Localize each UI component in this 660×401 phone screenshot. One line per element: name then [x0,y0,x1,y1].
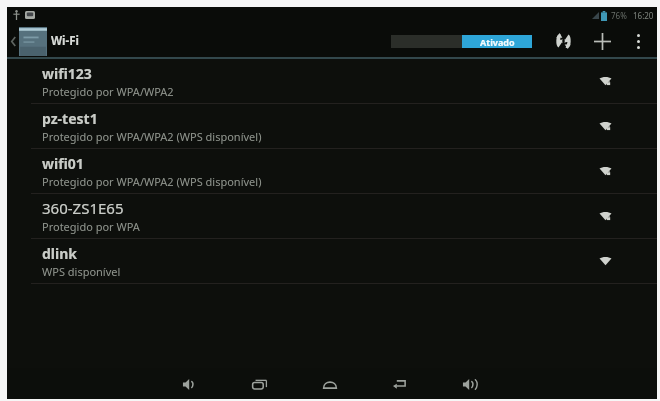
staticText: dlink [42,244,77,263]
staticText: Ativado [480,36,515,48]
staticText: 360-ZS1E65 [42,198,124,218]
button[interactable]: More options [626,26,650,56]
button[interactable]: Back [386,368,414,399]
staticText: wifi123 [42,64,92,83]
button[interactable]: Volume down [176,368,204,399]
button[interactable]: Wi-Fi on/off [391,35,532,48]
button[interactable]: 360-ZS1E65 [7,194,657,238]
button[interactable]: Wi-Fi settings [18,26,47,56]
staticText: Protegido por WPA/WPA2 [42,84,174,99]
button[interactable]: wifi123 [7,59,657,103]
button[interactable]: Volume up [456,368,484,399]
button[interactable]: Back [7,23,19,59]
button[interactable]: pz-test1 [7,104,657,148]
button[interactable]: Add network [588,26,616,56]
staticText: wifi01 [42,154,84,173]
button[interactable]: Scan [549,26,577,56]
staticText: 76% [611,10,627,21]
button[interactable]: Home [316,368,344,399]
button[interactable]: Recent apps [246,368,274,399]
staticText: pz-test1 [42,109,98,128]
button[interactable]: wifi01 [7,149,657,193]
staticText: Wi-Fi [51,33,79,49]
staticText: Protegido por WPA/WPA2 (WPS disponível) [42,174,262,189]
button[interactable]: dlink [7,239,657,283]
staticText: Protegido por WPA [42,219,140,234]
staticText: WPS disponível [42,264,121,279]
staticText: 16:20 [633,10,654,21]
staticText: Protegido por WPA/WPA2 (WPS disponível) [42,129,262,144]
